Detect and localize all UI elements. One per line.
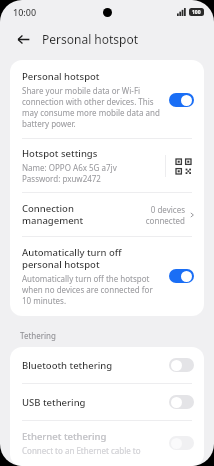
staticText: Tethering — [20, 330, 56, 341]
button[interactable]: Automatically turn off personal hotspot — [10, 237, 204, 316]
staticText: Ethernet tethering — [22, 430, 107, 443]
staticText: USB tethering — [22, 396, 169, 409]
staticText: 100 — [192, 9, 201, 16]
button[interactable]: USB tethering — [10, 384, 204, 420]
button[interactable]: Toggle — [169, 358, 194, 372]
staticText: Personal hotspot — [42, 31, 139, 47]
button[interactable]: Toggle — [169, 93, 194, 107]
staticText: Password: pxuw2472 — [22, 173, 101, 184]
staticText: Connect to an Ethernet cable to share yo… — [22, 445, 161, 455]
button[interactable]: Show QR code — [172, 155, 194, 177]
button[interactable]: Toggle — [169, 395, 194, 409]
staticText: Hotspot settings — [22, 147, 98, 160]
button[interactable]: Personal hotspot — [10, 60, 204, 138]
staticText: Automatically turn off personal hotspot — [22, 246, 161, 271]
button[interactable]: Ethernet tethering — [10, 421, 204, 466]
button[interactable]: Bluetooth tethering — [10, 347, 204, 383]
button[interactable]: Connection management — [10, 193, 204, 236]
staticText: Share your mobile data or Wi-Fi connecti… — [22, 85, 161, 129]
button[interactable]: Toggle — [169, 269, 194, 283]
staticText: 0 devices connected — [133, 204, 185, 226]
button[interactable]: Toggle — [169, 436, 194, 450]
button[interactable]: Hotspot settings — [10, 139, 204, 192]
staticText: Automatically turn off the hotspot when … — [22, 273, 161, 306]
staticText: Bluetooth tethering — [22, 359, 169, 372]
button[interactable]: Back — [10, 26, 36, 52]
staticText: 10:00 — [13, 6, 37, 18]
staticText: Personal hotspot — [22, 70, 100, 83]
staticText: Name: OPPO A6x 5G a7jv — [22, 162, 117, 173]
staticText: Connection management — [22, 202, 129, 227]
